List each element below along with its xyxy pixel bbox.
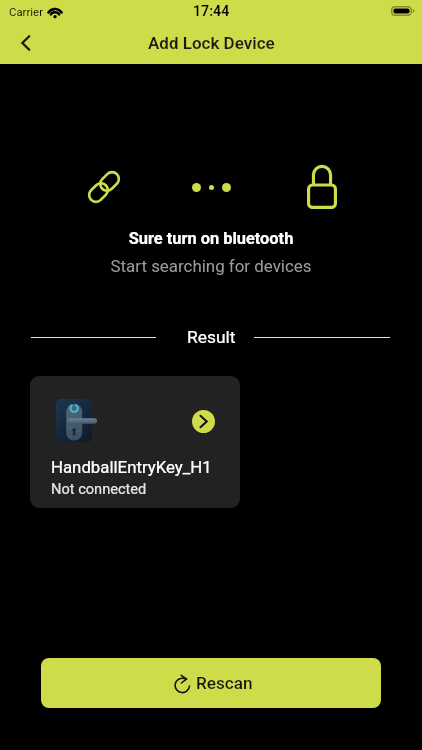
button[interactable]: Open device (192, 410, 215, 433)
staticText: Sure turn on bluetooth (0, 229, 422, 248)
staticText: Add Lock Device (148, 33, 275, 53)
button[interactable]: Open device (30, 376, 240, 508)
staticText: 17:44 (193, 3, 230, 20)
button[interactable]: Back (2, 25, 50, 61)
staticText: Start searching for devices (0, 256, 422, 276)
staticText: Not connected (51, 480, 147, 497)
staticText: Rescan (196, 673, 253, 693)
staticText: Result (187, 327, 236, 347)
button[interactable]: Rescan (41, 658, 381, 708)
staticText: Carrier (9, 5, 43, 18)
staticText: HandballEntryKey_H1 (51, 457, 212, 477)
